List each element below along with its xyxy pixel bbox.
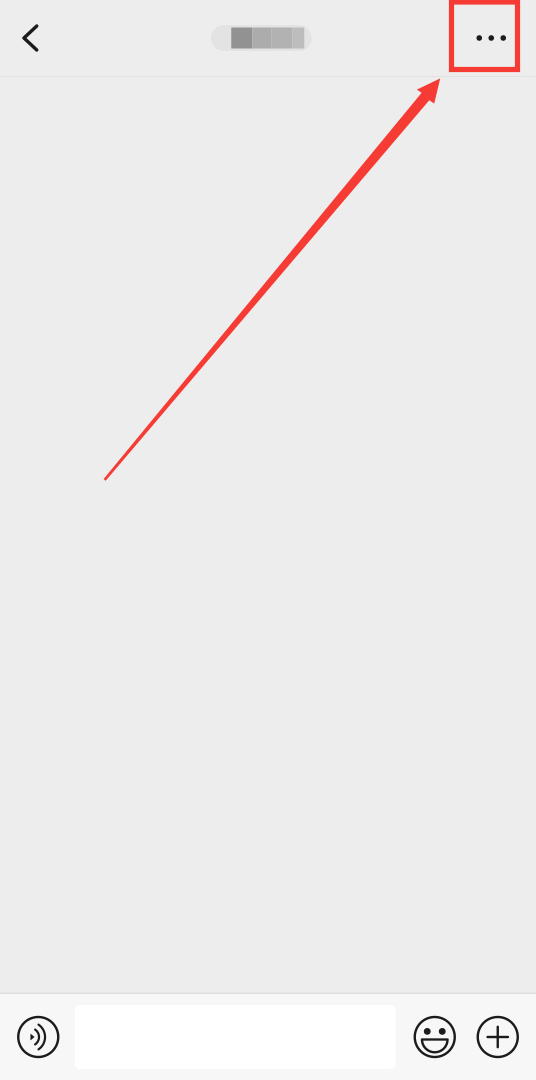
- button[interactable]: Back: [0, 0, 61, 76]
- button[interactable]: Emoji: [414, 1016, 456, 1058]
- button[interactable]: More: [477, 1016, 519, 1058]
- button[interactable]: More options: [457, 3, 525, 73]
- button[interactable]: Hold to talk: [17, 1016, 59, 1058]
